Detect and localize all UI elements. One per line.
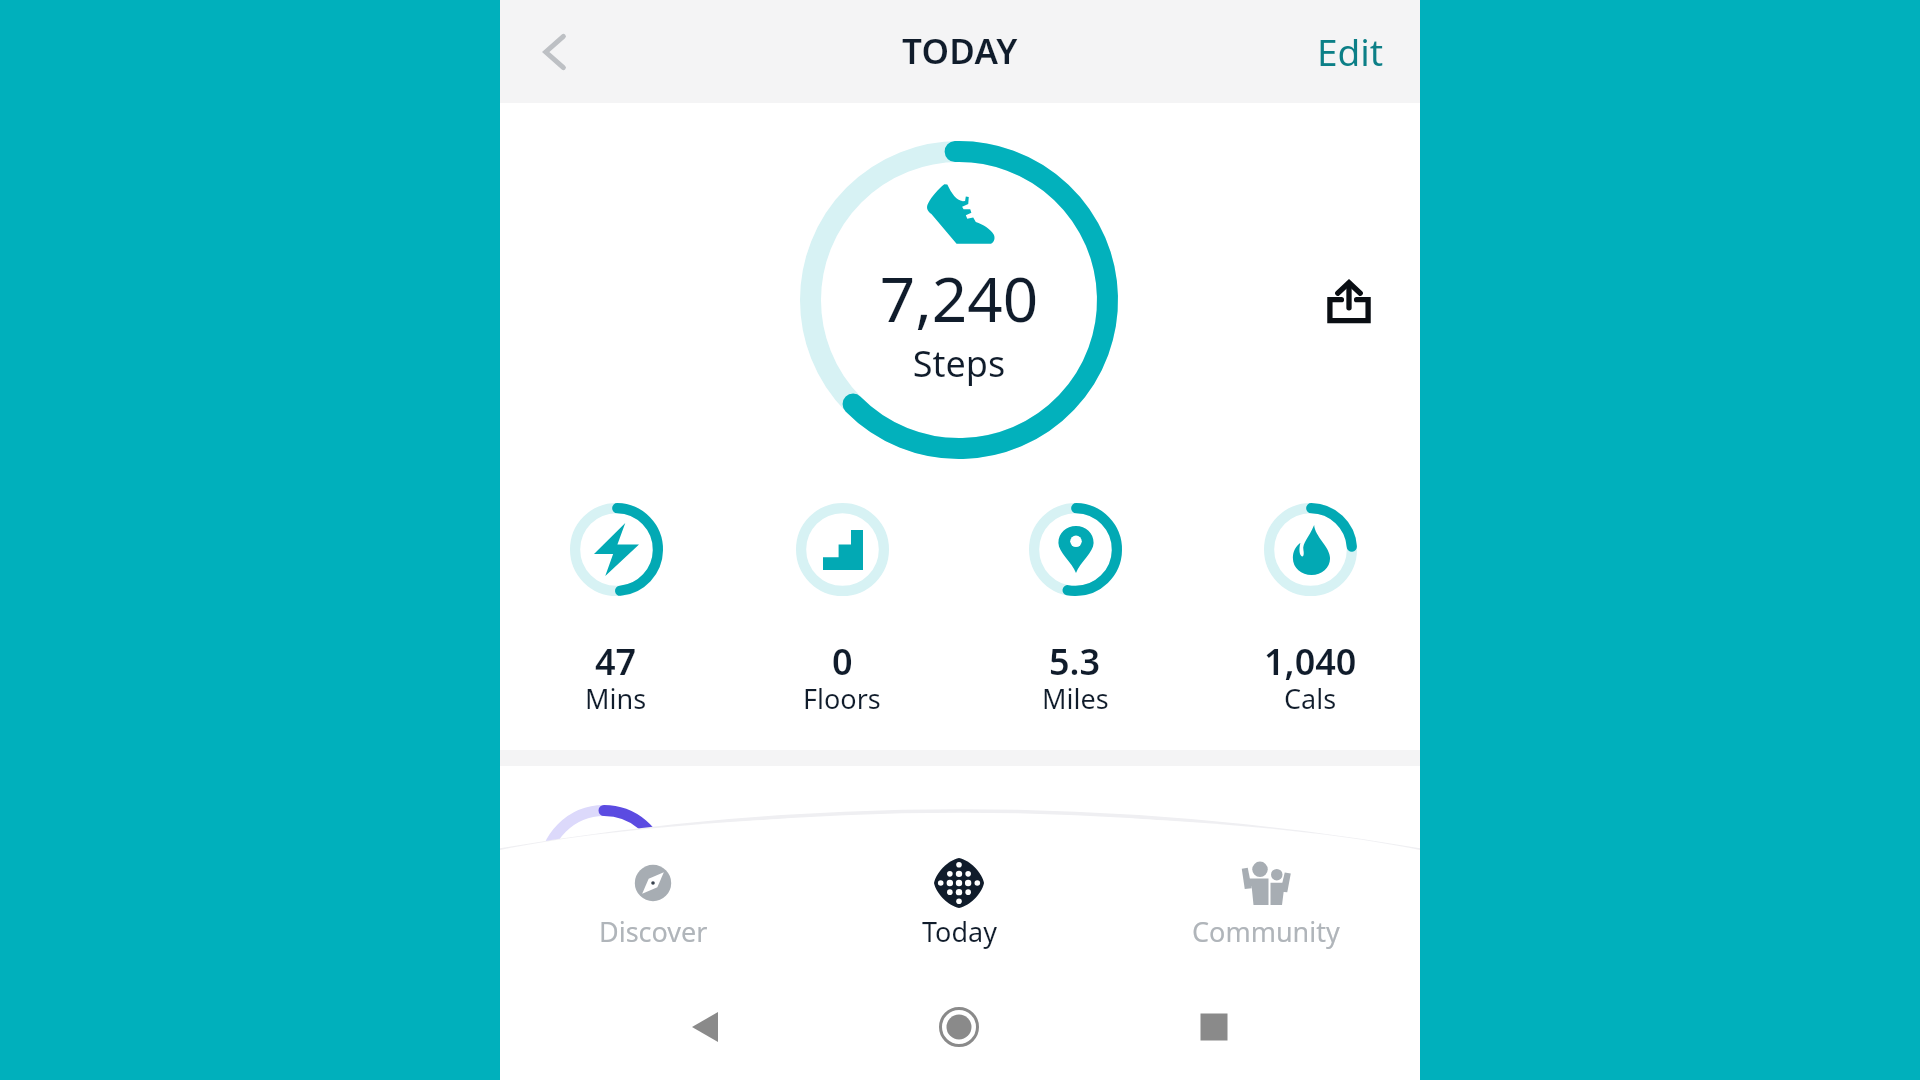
staticText: 47 [595,637,637,686]
button[interactable]: 0 [752,500,932,715]
staticText: Discover [599,913,708,950]
staticText: 5.3 [1049,637,1101,686]
staticText: Mins [585,680,647,717]
button[interactable]: 47 [526,500,706,715]
button[interactable]: Back [672,994,738,1060]
staticText: Floors [803,680,881,717]
staticText: 1,040 [1264,637,1357,686]
staticText: Miles [1042,680,1109,717]
button[interactable]: 1,040 [1220,500,1400,715]
button[interactable]: Community [1156,845,1376,965]
staticText: Community [1192,913,1340,950]
button[interactable]: Share [1306,258,1391,343]
button[interactable]: 7,240 [800,141,1118,459]
staticText: Cals [1284,680,1337,717]
staticText: TODAY [902,27,1018,75]
button[interactable]: Edit [1305,17,1396,87]
staticText: 7,240 [800,256,1118,340]
button[interactable]: 5.3 [985,500,1165,715]
staticText: 0 [832,637,853,686]
staticText: Edit [1317,26,1384,76]
staticText: Today [922,913,997,950]
button[interactable]: Back [522,19,588,85]
staticText: Steps [800,339,1118,388]
button[interactable]: Recent apps [1181,994,1247,1060]
button[interactable]: Today [849,845,1069,965]
button[interactable]: Discover [543,845,763,965]
button[interactable]: Home [926,994,992,1060]
